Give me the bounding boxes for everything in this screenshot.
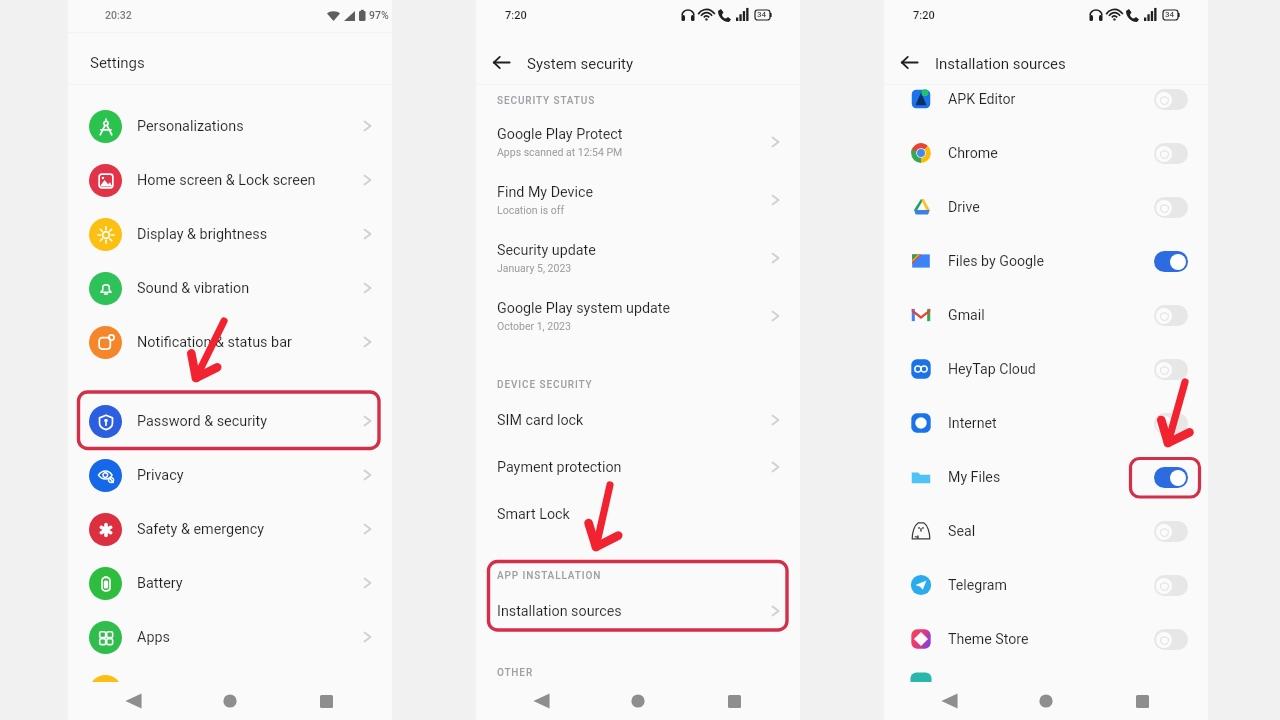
button[interactable]: Home: [622, 689, 654, 713]
button[interactable]: Home: [1030, 689, 1062, 713]
staticText: Security update: [497, 242, 596, 259]
button[interactable]: Theme Store: [884, 612, 1208, 666]
staticText: Chrome: [948, 145, 998, 162]
button[interactable]: Back: [526, 689, 558, 713]
button[interactable]: Password & security: [68, 394, 392, 448]
staticText: Google Play system update: [497, 300, 671, 317]
button[interactable]: Off: [1154, 629, 1188, 650]
button[interactable]: Google Play system update: [476, 290, 800, 342]
staticText: 20:32: [105, 9, 132, 21]
staticText: Google Play Protect: [497, 126, 623, 143]
staticText: Settings: [90, 54, 145, 72]
button[interactable]: Installation sources: [476, 591, 800, 631]
button[interactable]: Gmail: [884, 288, 1208, 342]
staticText: Find My Device: [497, 184, 594, 201]
button[interactable]: Home: [214, 689, 246, 713]
staticText: System security: [527, 55, 634, 73]
staticText: January 5, 2023: [497, 262, 572, 274]
button[interactable]: Google Play Protect: [476, 116, 800, 168]
button[interactable]: Home screen & Lock screen: [68, 153, 392, 207]
staticText: Battery: [137, 575, 183, 592]
staticText: APK Editor: [948, 91, 1016, 108]
staticText: Display & brightness: [137, 226, 268, 243]
button[interactable]: Sound & vibration: [68, 261, 392, 315]
button[interactable]: Off: [1154, 89, 1188, 110]
button[interactable]: Recent apps: [310, 689, 342, 713]
button[interactable]: HeyTap Cloud: [884, 342, 1208, 396]
staticText: My Files: [948, 469, 1001, 486]
staticText: Seal: [948, 523, 976, 540]
button[interactable]: Personalizations: [68, 99, 392, 153]
button[interactable]: Smart Lock: [476, 494, 800, 534]
button[interactable]: Off: [1154, 521, 1188, 542]
button[interactable]: Off: [1154, 305, 1188, 326]
staticText: Payment protection: [497, 459, 622, 476]
staticText: 34: [757, 10, 767, 19]
button[interactable]: Apps: [68, 610, 392, 664]
staticText: Location is off: [497, 204, 565, 216]
button[interactable]: SIM card lock: [476, 400, 800, 440]
button[interactable]: Back: [899, 52, 919, 72]
button[interactable]: Safety & emergency: [68, 502, 392, 556]
staticText: Gmail: [948, 307, 985, 324]
staticText: Installation sources: [935, 55, 1066, 73]
button[interactable]: Display & brightness: [68, 207, 392, 261]
button[interactable]: Off: [1154, 143, 1188, 164]
button[interactable]: Payment protection: [476, 447, 800, 487]
button[interactable]: My Files: [884, 450, 1208, 504]
staticText: SIM card lock: [497, 412, 584, 429]
staticText: APP INSTALLATION: [497, 570, 602, 582]
button[interactable]: Security update: [476, 232, 800, 284]
button[interactable]: Internet: [884, 396, 1208, 450]
staticText: Notification & status bar: [137, 334, 292, 351]
button[interactable]: On: [1154, 467, 1188, 488]
staticText: Apps scanned at 12:54 PM: [497, 146, 623, 158]
staticText: Home screen & Lock screen: [137, 172, 316, 189]
staticText: Smart Lock: [497, 506, 570, 523]
staticText: Privacy: [137, 467, 184, 484]
button[interactable]: Off: [1154, 413, 1188, 434]
button[interactable]: Telegram: [884, 558, 1208, 612]
staticText: OTHER: [497, 667, 534, 679]
button[interactable]: APK Editor: [884, 72, 1208, 126]
staticText: October 1, 2023: [497, 320, 571, 332]
staticText: 7:20: [913, 9, 935, 22]
staticText: Sound & vibration: [137, 280, 250, 297]
staticText: Apps: [137, 629, 170, 646]
staticText: Personalizations: [137, 118, 244, 135]
staticText: Files by Google: [948, 253, 1045, 270]
button[interactable]: Off: [1154, 575, 1188, 596]
staticText: 34: [1165, 10, 1175, 19]
button[interactable]: Privacy: [68, 448, 392, 502]
button[interactable]: Off: [1154, 197, 1188, 218]
staticText: Theme Store: [948, 631, 1029, 648]
staticText: Installation sources: [497, 603, 622, 620]
button[interactable]: Recent apps: [718, 689, 750, 713]
button[interactable]: Drive: [884, 180, 1208, 234]
button[interactable]: Files by Google: [884, 234, 1208, 288]
button[interactable]: Battery: [68, 556, 392, 610]
button[interactable]: Recent apps: [1126, 689, 1158, 713]
button[interactable]: Off: [1154, 359, 1188, 380]
staticText: 97%: [369, 9, 389, 21]
staticText: 7:20: [505, 9, 527, 22]
staticText: DEVICE SECURITY: [497, 379, 593, 391]
staticText: SECURITY STATUS: [497, 95, 596, 107]
staticText: Internet: [948, 415, 997, 432]
staticText: Telegram: [948, 577, 1007, 594]
button[interactable]: Chrome: [884, 126, 1208, 180]
staticText: Safety & emergency: [137, 521, 265, 538]
button[interactable]: Notification & status bar: [68, 315, 392, 369]
button[interactable]: Find My Device: [476, 174, 800, 226]
button[interactable]: Seal: [884, 504, 1208, 558]
staticText: HeyTap Cloud: [948, 361, 1036, 378]
button[interactable]: Back: [118, 689, 150, 713]
button[interactable]: Back: [934, 689, 966, 713]
button[interactable]: On: [1154, 251, 1188, 272]
staticText: Password & security: [137, 413, 268, 430]
staticText: Drive: [948, 199, 980, 216]
button[interactable]: Back: [491, 52, 511, 72]
